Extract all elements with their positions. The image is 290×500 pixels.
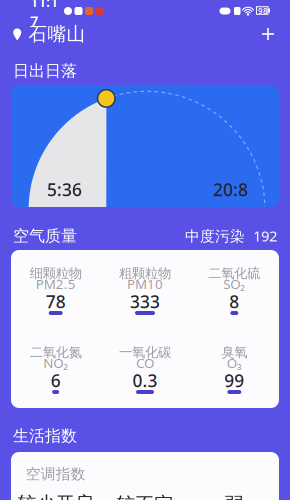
staticText: 二氧化硫 bbox=[208, 265, 260, 281]
button[interactable]: Add city bbox=[255, 21, 281, 47]
staticText: 粗颗粒物 bbox=[119, 265, 171, 281]
staticText: 二氧化氮 bbox=[30, 344, 82, 360]
staticText: SO₂ bbox=[223, 275, 245, 293]
staticText: 一氧化碳 bbox=[119, 344, 171, 360]
staticText: 空调指数 bbox=[26, 465, 86, 483]
staticText: 石嘴山 bbox=[28, 22, 85, 45]
staticText: 78 bbox=[46, 290, 66, 313]
staticText: 5:36 bbox=[47, 178, 82, 201]
staticText: 6 bbox=[51, 369, 61, 392]
staticText: 臭氧 bbox=[221, 344, 247, 360]
staticText: 20:8 bbox=[213, 178, 248, 201]
staticText: 较不宜 bbox=[116, 493, 173, 500]
staticText: 生活指数 bbox=[13, 426, 77, 446]
staticText: 98 bbox=[258, 6, 268, 16]
staticText: CO bbox=[136, 354, 154, 372]
staticText: 弱 bbox=[225, 493, 244, 500]
staticText: 较少开启 bbox=[18, 492, 94, 500]
staticText: 99 bbox=[224, 369, 244, 392]
staticText: 中度污染 192 bbox=[185, 226, 277, 246]
staticText: 0.3 bbox=[132, 369, 157, 392]
staticText: 11:17 bbox=[30, 0, 58, 30]
staticText: O₃ bbox=[227, 354, 242, 372]
staticText: 333 bbox=[130, 290, 160, 313]
staticText: 日出日落 bbox=[13, 61, 77, 81]
staticText: PM2.5 bbox=[36, 275, 76, 293]
staticText: 8 bbox=[229, 290, 239, 313]
staticText: 细颗粒物 bbox=[30, 265, 82, 281]
staticText: 空气质量 bbox=[13, 226, 77, 246]
staticText: PM10 bbox=[127, 275, 163, 293]
staticText: NO₂ bbox=[43, 354, 68, 372]
